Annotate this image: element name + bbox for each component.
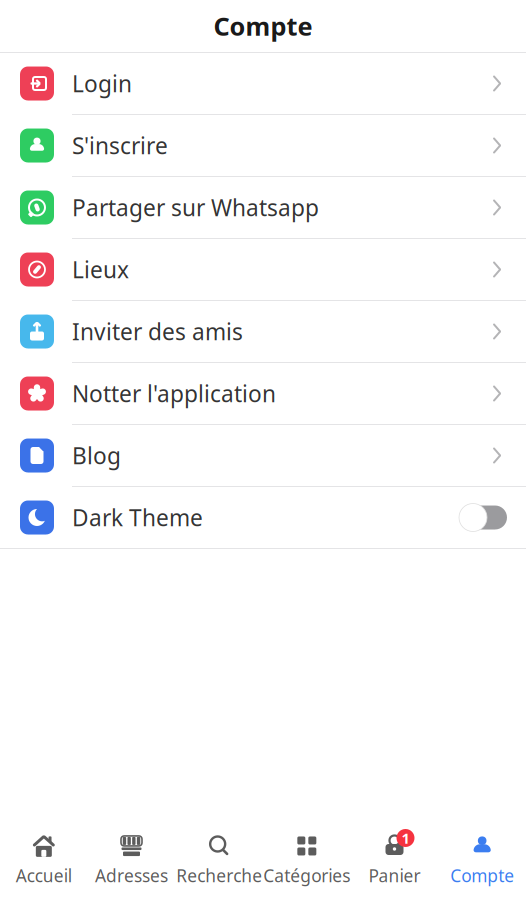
staticText: Adresses — [95, 864, 168, 887]
staticText: Accueil — [16, 864, 72, 887]
button[interactable]: Recherche — [175, 829, 263, 891]
button[interactable]: Notter l'application — [0, 363, 526, 424]
button[interactable]: Login — [0, 53, 526, 114]
staticText: Recherche — [176, 864, 262, 887]
staticText: Login — [72, 68, 132, 98]
button[interactable]: Partager sur Whatsapp — [0, 177, 526, 238]
button[interactable]: Dark Theme — [0, 487, 526, 548]
button[interactable]: Lieux — [0, 239, 526, 300]
staticText: Partager sur Whatsapp — [72, 192, 319, 222]
button[interactable]: Adresses — [88, 829, 175, 891]
button[interactable]: Accueil — [0, 829, 88, 891]
staticText: Catégories — [263, 864, 350, 887]
staticText: 1 — [401, 828, 409, 848]
button[interactable]: Catégories — [263, 829, 351, 891]
staticText: Notter l'application — [72, 378, 276, 408]
staticText: Inviter des amis — [72, 316, 243, 346]
staticText: Lieux — [72, 254, 129, 284]
button[interactable]: S'inscrire — [0, 115, 526, 176]
staticText: Compte — [213, 9, 312, 43]
button[interactable]: Compte — [438, 829, 526, 891]
button[interactable]: Blog — [0, 425, 526, 486]
button[interactable]: Inviter des amis — [0, 301, 526, 362]
staticText: Panier — [368, 864, 420, 887]
staticText: Dark Theme — [72, 502, 203, 532]
button[interactable]: 1 — [351, 829, 438, 891]
staticText: S'inscrire — [72, 130, 168, 160]
staticText: Blog — [72, 440, 121, 470]
staticText: Compte — [450, 864, 514, 887]
